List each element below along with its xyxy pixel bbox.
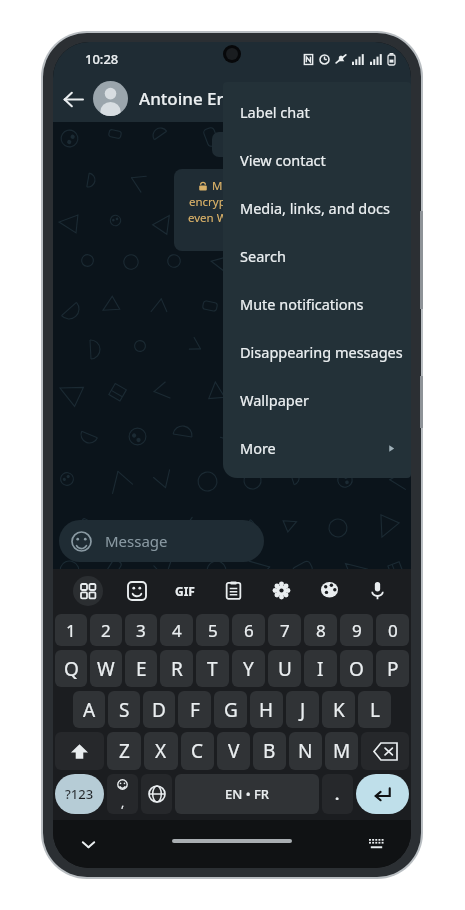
button[interactable]: 7 [268, 614, 301, 646]
staticText: H [259, 697, 274, 723]
staticText: B [263, 738, 276, 764]
button[interactable]: 5 [196, 614, 229, 646]
button[interactable]: Clipboard [209, 569, 257, 612]
button[interactable]: D [143, 691, 175, 728]
staticText: C [191, 738, 204, 764]
staticText: EN • FR [225, 785, 270, 803]
staticText: ?123 [65, 785, 94, 803]
staticText: 7 [280, 619, 290, 642]
button[interactable]: Video call [279, 77, 323, 121]
staticText: O [349, 656, 364, 682]
button[interactable]: Theme [305, 569, 353, 612]
button[interactable]: Mute notifications [223, 280, 411, 328]
button[interactable]: Message [59, 520, 264, 562]
staticText: D [152, 697, 166, 723]
button[interactable]: B [253, 732, 286, 770]
button[interactable]: M [325, 732, 358, 770]
button[interactable]: 4 [160, 614, 193, 646]
button[interactable]: EN • FR [175, 774, 319, 814]
staticText: 1 [66, 619, 76, 642]
button[interactable]: View contact [223, 136, 411, 184]
staticText: Z [119, 738, 130, 764]
button[interactable]: Q [55, 650, 87, 687]
button[interactable]: ?123 [55, 774, 104, 814]
staticText: Message [105, 531, 168, 551]
button[interactable]: Label chat [223, 88, 411, 136]
staticText: . [335, 784, 340, 804]
staticText: Wallpaper [240, 390, 309, 410]
button[interactable]: X [144, 732, 178, 770]
button[interactable]: Wallpaper [223, 376, 411, 424]
button[interactable]: C [181, 732, 214, 770]
staticText: 5 [208, 619, 218, 642]
staticText: , [121, 794, 125, 810]
staticText: 2 [101, 619, 111, 642]
button[interactable]: P [376, 650, 409, 687]
button[interactable]: 6 [232, 614, 265, 646]
button[interactable]: 0 [376, 614, 409, 646]
button[interactable]: V [217, 732, 250, 770]
staticText: U [278, 656, 292, 682]
staticText: Search [240, 246, 286, 266]
button[interactable]: Hide keyboard [73, 829, 103, 859]
button[interactable]: 8 [304, 614, 337, 646]
button[interactable]: Search [223, 232, 411, 280]
button[interactable]: Settings [257, 569, 305, 612]
button[interactable]: J [286, 691, 319, 728]
button[interactable]: N [289, 732, 322, 770]
button[interactable]: More [223, 424, 411, 472]
button[interactable]: Disappearing messages [223, 328, 411, 376]
staticText: 9 [352, 619, 362, 642]
button[interactable]: Back [53, 79, 93, 119]
staticText: F [190, 697, 200, 723]
button[interactable]: L [358, 691, 391, 728]
button[interactable]: Antoine Er [93, 75, 411, 122]
staticText: P [387, 656, 399, 682]
staticText: K [333, 697, 345, 723]
button[interactable]: G [214, 691, 247, 728]
button[interactable]: Y [232, 650, 265, 687]
staticText: I [317, 656, 324, 682]
button[interactable]: Toolbar [73, 576, 103, 606]
button[interactable]: 9 [340, 614, 373, 646]
button[interactable]: GIF [161, 569, 209, 612]
staticText: N [298, 738, 313, 764]
button[interactable]: I [304, 650, 337, 687]
button[interactable]: Shift [55, 732, 104, 770]
staticText: V [228, 738, 240, 764]
button[interactable]: F [178, 691, 211, 728]
staticText: GIF [175, 583, 195, 599]
button[interactable]: Z [107, 732, 141, 770]
button[interactable]: Enter [356, 774, 409, 814]
button[interactable]: Emoji and comma [107, 774, 138, 814]
staticText: View contact [240, 150, 326, 170]
button[interactable]: U [268, 650, 301, 687]
button[interactable]: E [125, 650, 157, 687]
button[interactable]: R [160, 650, 193, 687]
button[interactable]: K [322, 691, 355, 728]
button[interactable]: 1 [55, 614, 87, 646]
button[interactable]: W [90, 650, 122, 687]
button[interactable]: . [322, 774, 353, 814]
button[interactable]: Voice input [353, 569, 401, 612]
button[interactable]: H [250, 691, 283, 728]
button[interactable]: Change language [141, 774, 172, 814]
button[interactable]: T [196, 650, 229, 687]
staticText: W [97, 656, 115, 682]
button[interactable]: S [108, 691, 140, 728]
staticText: Antoine Er [139, 87, 224, 110]
button[interactable]: 2 [90, 614, 122, 646]
button[interactable]: Switch keyboard [361, 829, 391, 859]
staticText: J [300, 697, 306, 723]
button[interactable]: Backspace [361, 732, 409, 770]
button[interactable]: A [73, 691, 105, 728]
staticText: Y [243, 656, 254, 682]
button[interactable]: Stickers [112, 569, 161, 612]
button[interactable]: O [340, 650, 373, 687]
button[interactable]: 3 [125, 614, 157, 646]
button[interactable]: Media, links, and docs [223, 184, 411, 232]
staticText: 8 [316, 619, 326, 642]
